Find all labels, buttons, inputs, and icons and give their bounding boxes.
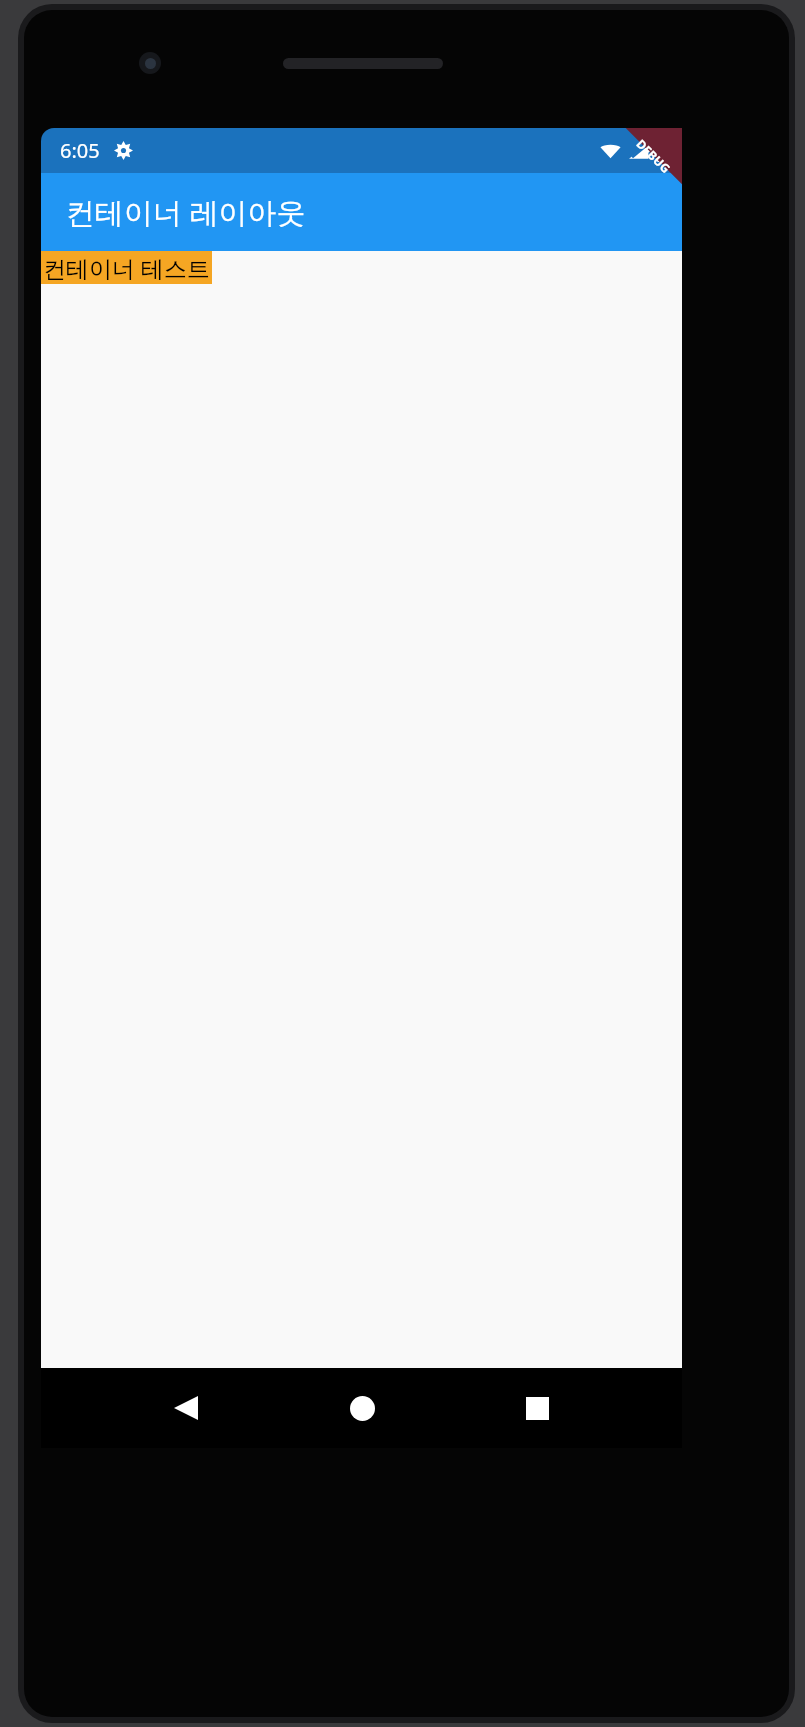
button[interactable]: Home	[331, 1377, 393, 1439]
staticText: DEBUG	[633, 135, 674, 176]
button[interactable]: 컨테이너 테스트	[41, 251, 212, 284]
button[interactable]: Recent apps	[506, 1377, 568, 1439]
button[interactable]: Back	[155, 1377, 217, 1439]
staticText: 6:05	[60, 137, 100, 164]
staticText: 컨테이너 레이아웃	[66, 192, 306, 232]
staticText: 컨테이너 테스트	[43, 252, 210, 283]
